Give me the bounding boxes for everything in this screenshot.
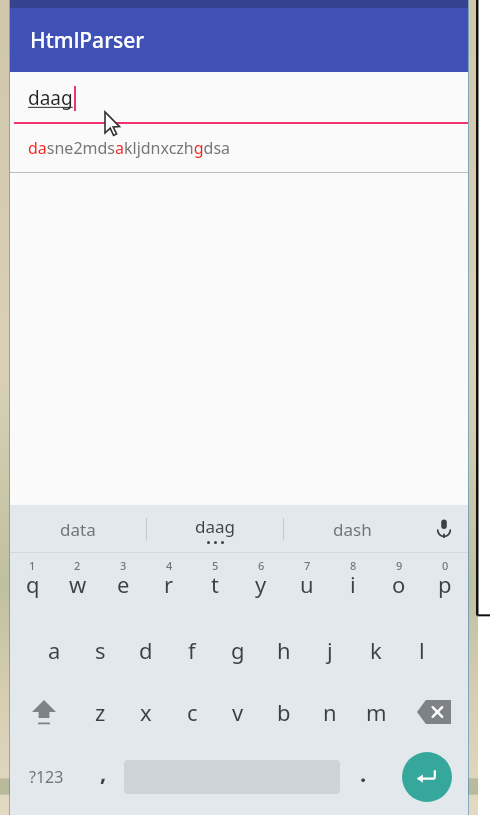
staticText: c	[187, 697, 198, 727]
staticText: 7	[304, 558, 311, 573]
staticText: daag	[195, 515, 235, 538]
button[interactable]: n	[307, 681, 353, 743]
staticText: x	[140, 697, 152, 727]
button[interactable]: 7	[284, 553, 330, 619]
button[interactable]: b	[261, 681, 307, 743]
button[interactable]: f	[169, 619, 215, 681]
staticText: .	[360, 758, 367, 788]
staticText: t	[211, 569, 219, 599]
button[interactable]: l	[399, 619, 445, 681]
button[interactable]: data	[10, 505, 146, 553]
staticText: 1	[29, 558, 36, 573]
staticText: j	[327, 635, 333, 665]
button[interactable]: c	[169, 681, 215, 743]
staticText: 3	[120, 558, 127, 573]
button[interactable]: v	[215, 681, 261, 743]
staticText: q	[26, 569, 40, 599]
staticText: ?123	[29, 766, 64, 788]
staticText: 0	[442, 558, 449, 573]
button[interactable]: k	[353, 619, 399, 681]
button[interactable]: z	[78, 681, 123, 743]
staticText: h	[277, 635, 291, 665]
staticText: i	[350, 569, 356, 599]
button[interactable]: 4	[146, 553, 192, 619]
button[interactable]: 1	[10, 553, 55, 619]
staticText: 4	[166, 558, 173, 573]
staticText: ,	[100, 757, 107, 787]
staticText: z	[95, 697, 106, 727]
staticText: o	[392, 569, 406, 599]
staticText: b	[277, 697, 291, 727]
staticText: d	[139, 635, 153, 665]
staticText: r	[164, 569, 174, 599]
button[interactable]: dash	[284, 505, 420, 553]
button[interactable]: g	[215, 619, 261, 681]
button[interactable]: daag	[147, 505, 283, 553]
button[interactable]: 6	[238, 553, 284, 619]
staticText: g	[231, 635, 245, 665]
staticText: dash	[333, 518, 372, 541]
staticText: 8	[350, 558, 357, 573]
staticText: v	[232, 697, 244, 727]
button[interactable]: s	[77, 619, 123, 681]
button[interactable]: 5	[192, 553, 238, 619]
staticText: s	[95, 635, 106, 665]
button[interactable]: 2	[55, 553, 100, 619]
staticText: y	[255, 569, 267, 599]
button[interactable]: ,	[83, 743, 124, 811]
staticText: k	[370, 635, 382, 665]
button[interactable]: x	[123, 681, 169, 743]
button[interactable]: 0	[422, 553, 468, 619]
staticText: dasne2mdsakljdnxczhgdsa	[28, 137, 231, 159]
button[interactable]: m	[353, 681, 399, 743]
staticText: daag	[28, 85, 73, 111]
button[interactable]: 9	[376, 553, 422, 619]
button[interactable]: Backspace	[399, 681, 468, 743]
staticText: u	[300, 569, 314, 599]
button[interactable]: Shift	[10, 681, 78, 743]
button[interactable]: a	[32, 619, 77, 681]
staticText: f	[188, 635, 196, 665]
staticText: m	[366, 697, 387, 727]
button[interactable]: 8	[330, 553, 376, 619]
staticText: w	[69, 569, 87, 599]
button[interactable]: h	[261, 619, 307, 681]
button[interactable]: j	[307, 619, 353, 681]
staticText: e	[117, 569, 130, 599]
staticText: l	[419, 635, 425, 665]
button[interactable]: HtmlParser	[10, 8, 468, 72]
staticText: 5	[212, 558, 219, 573]
staticText: 9	[396, 558, 403, 573]
button[interactable]: Voice input	[420, 505, 468, 553]
staticText: 6	[258, 558, 265, 573]
staticText: p	[438, 569, 452, 599]
button[interactable]: 3	[100, 553, 146, 619]
button[interactable]: Enter	[402, 752, 452, 802]
staticText: HtmlParser	[30, 26, 145, 55]
button[interactable]: ?123	[10, 743, 83, 811]
staticText: a	[48, 635, 61, 665]
staticText: data	[60, 518, 96, 541]
button[interactable]: daag	[10, 72, 468, 124]
button[interactable]: dasne2mdsakljdnxczhgdsa	[10, 124, 468, 172]
button[interactable]: .	[340, 743, 386, 811]
staticText: 2	[74, 558, 81, 573]
button[interactable]: d	[123, 619, 169, 681]
staticText: n	[323, 697, 337, 727]
